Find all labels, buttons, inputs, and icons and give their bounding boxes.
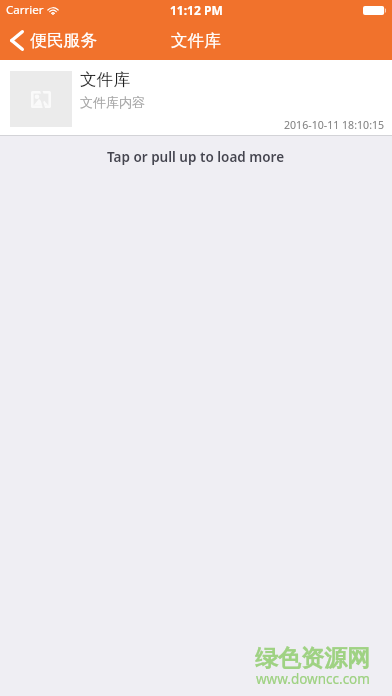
staticText: Tap or pull up to load more	[107, 148, 285, 166]
staticText: 文件库	[80, 69, 130, 90]
button[interactable]: Tap or pull up to load more	[0, 136, 392, 178]
staticText: Carrier	[6, 2, 44, 18]
button[interactable]: Back to 便民服务	[0, 20, 108, 60]
staticText: www.downcc.com	[256, 670, 370, 688]
staticText: 绿色资源网	[255, 644, 370, 673]
staticText: 文件库内容	[80, 94, 145, 110]
staticText: 文件库	[171, 30, 221, 51]
staticText: 便民服务	[30, 30, 98, 51]
other: 文件库 thumbnail	[10, 71, 72, 127]
staticText: 2016-10-11 18:10:15	[284, 118, 385, 132]
staticText: 11:12 PM	[170, 2, 223, 18]
button[interactable]: 文件库 thumbnail	[0, 60, 392, 135]
